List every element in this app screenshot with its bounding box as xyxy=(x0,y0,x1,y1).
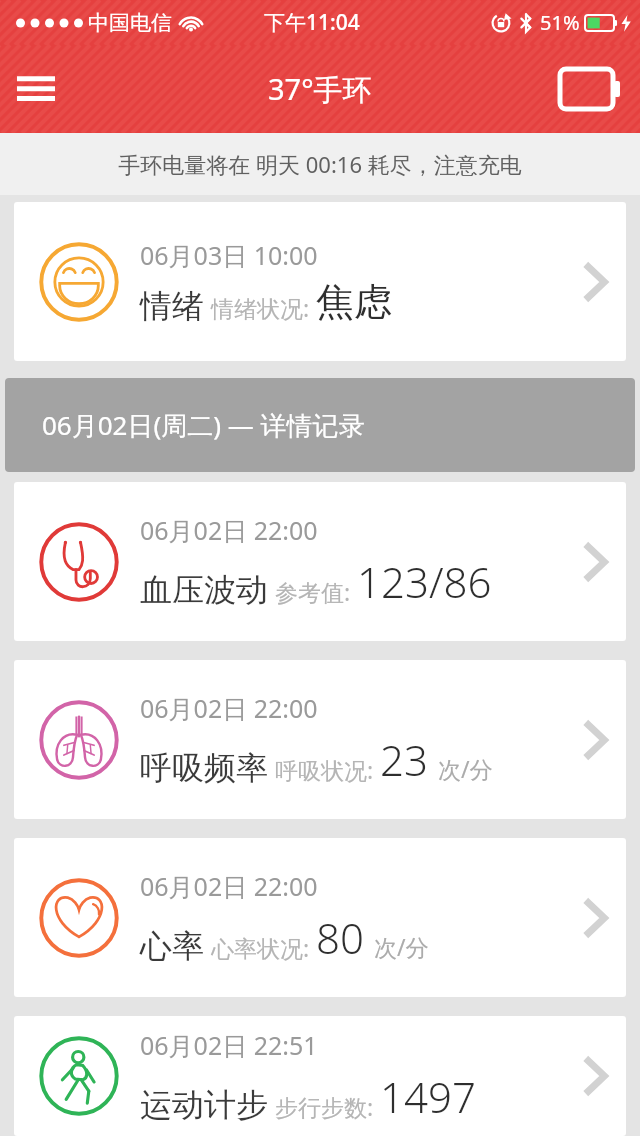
staticText: 呼吸状况: xyxy=(275,754,374,785)
staticText: 06月03日 10:00 xyxy=(140,238,318,272)
staticText: 123/86 xyxy=(357,553,492,610)
staticText: 80 xyxy=(316,909,364,966)
staticText: 参考值: xyxy=(275,576,351,607)
staticText: 心率状况: xyxy=(211,932,310,963)
staticText: 中国电信 xyxy=(88,10,172,36)
staticText: 06月02日 22:00 xyxy=(140,513,318,547)
button[interactable]: 06月02日 22:00 xyxy=(14,838,626,997)
staticText: 次/分 xyxy=(374,931,429,962)
staticText: 心率 xyxy=(140,926,204,966)
staticText: 情绪 xyxy=(140,286,204,326)
staticText: 23 xyxy=(380,731,428,788)
staticText: 1497 xyxy=(380,1068,476,1125)
staticText: 06月02日(周二) — 详情记录 xyxy=(42,407,365,443)
staticText: 06月02日 22:00 xyxy=(140,869,318,903)
staticText: 手环电量将在 明天 00:16 耗尽，注意充电 xyxy=(118,149,522,179)
staticText: 步行步数: xyxy=(275,1091,374,1122)
staticText: 51% xyxy=(540,9,580,36)
staticText: 焦虑 xyxy=(316,278,392,326)
button[interactable]: Band battery xyxy=(558,63,622,115)
staticText: 情绪状况: xyxy=(211,292,310,323)
staticText: 运动计步 xyxy=(140,1085,268,1125)
staticText: 呼吸频率 xyxy=(140,748,268,788)
button[interactable]: 06月03日 10:00 xyxy=(14,202,626,361)
staticText: 06月02日 22:00 xyxy=(140,691,318,725)
button[interactable]: 06月02日 22:00 xyxy=(14,660,626,819)
button[interactable]: Menu xyxy=(8,61,64,117)
staticText: 血压波动 xyxy=(140,570,268,610)
staticText: 次/分 xyxy=(438,753,493,784)
button[interactable]: 06月02日 22:51 xyxy=(14,1016,626,1136)
button[interactable]: 06月02日(周二) — 详情记录 xyxy=(5,378,635,472)
button[interactable]: 06月02日 22:00 xyxy=(14,482,626,641)
staticText: 下午11:04 xyxy=(264,8,360,37)
staticText: 06月02日 22:51 xyxy=(140,1028,318,1062)
staticText: 37°手环 xyxy=(268,69,372,109)
